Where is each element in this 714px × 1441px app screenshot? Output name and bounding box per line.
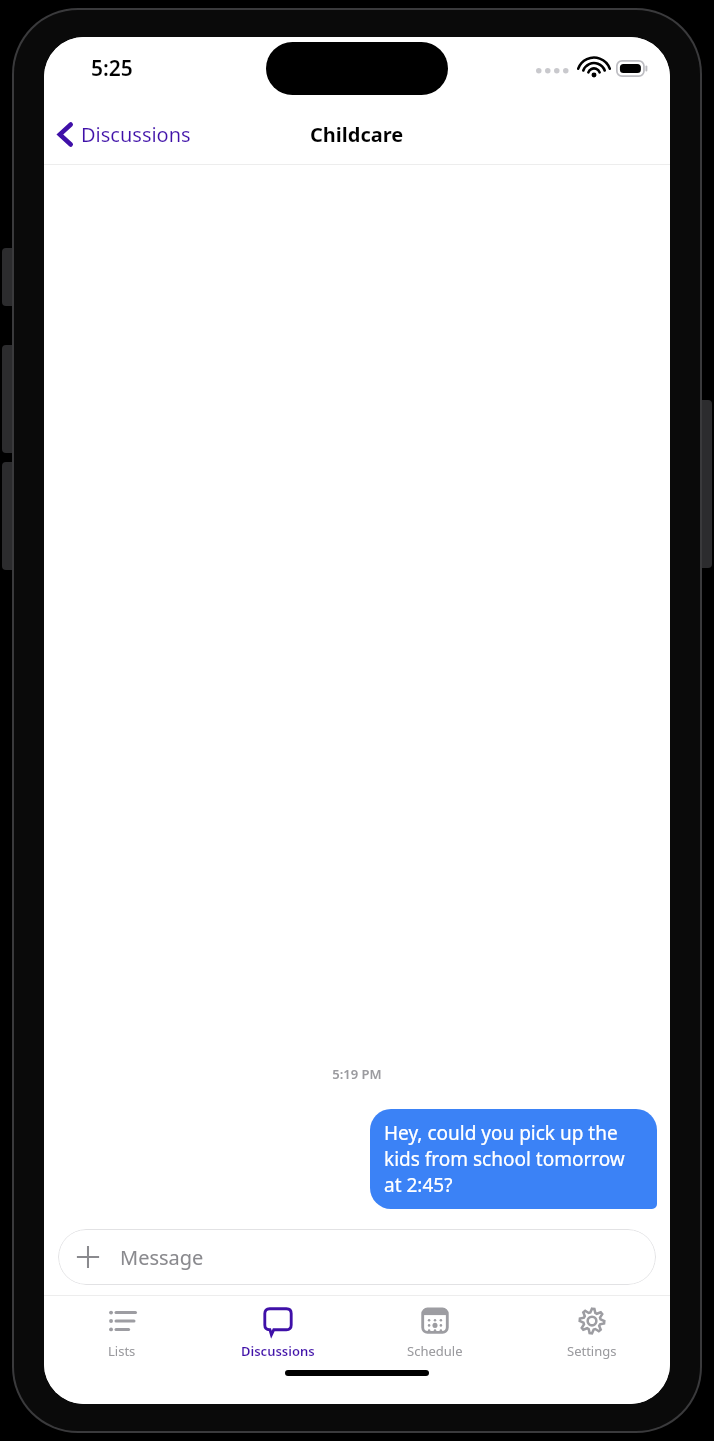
staticText: Schedule [407, 1342, 463, 1360]
button[interactable]: Message [58, 1229, 656, 1285]
button[interactable]: Hey, could you pick up the kids from sch… [370, 1109, 657, 1209]
staticText: 5:25 [91, 54, 133, 83]
button[interactable]: Discussions [44, 115, 201, 154]
staticText: Discussions [241, 1342, 315, 1360]
staticText: Discussions [81, 121, 191, 148]
staticText: Settings [567, 1342, 617, 1360]
staticText: 5:19 PM [44, 1065, 670, 1083]
button[interactable]: Lists [44, 1296, 200, 1370]
staticText: Message [120, 1244, 204, 1271]
staticText: Childcare [310, 121, 404, 148]
button[interactable]: Schedule [356, 1296, 513, 1370]
staticText: Lists [108, 1342, 136, 1360]
button[interactable]: Discussions [200, 1296, 356, 1370]
staticText: Hey, could you pick up the kids from sch… [384, 1120, 643, 1198]
button[interactable]: Settings [513, 1296, 670, 1370]
